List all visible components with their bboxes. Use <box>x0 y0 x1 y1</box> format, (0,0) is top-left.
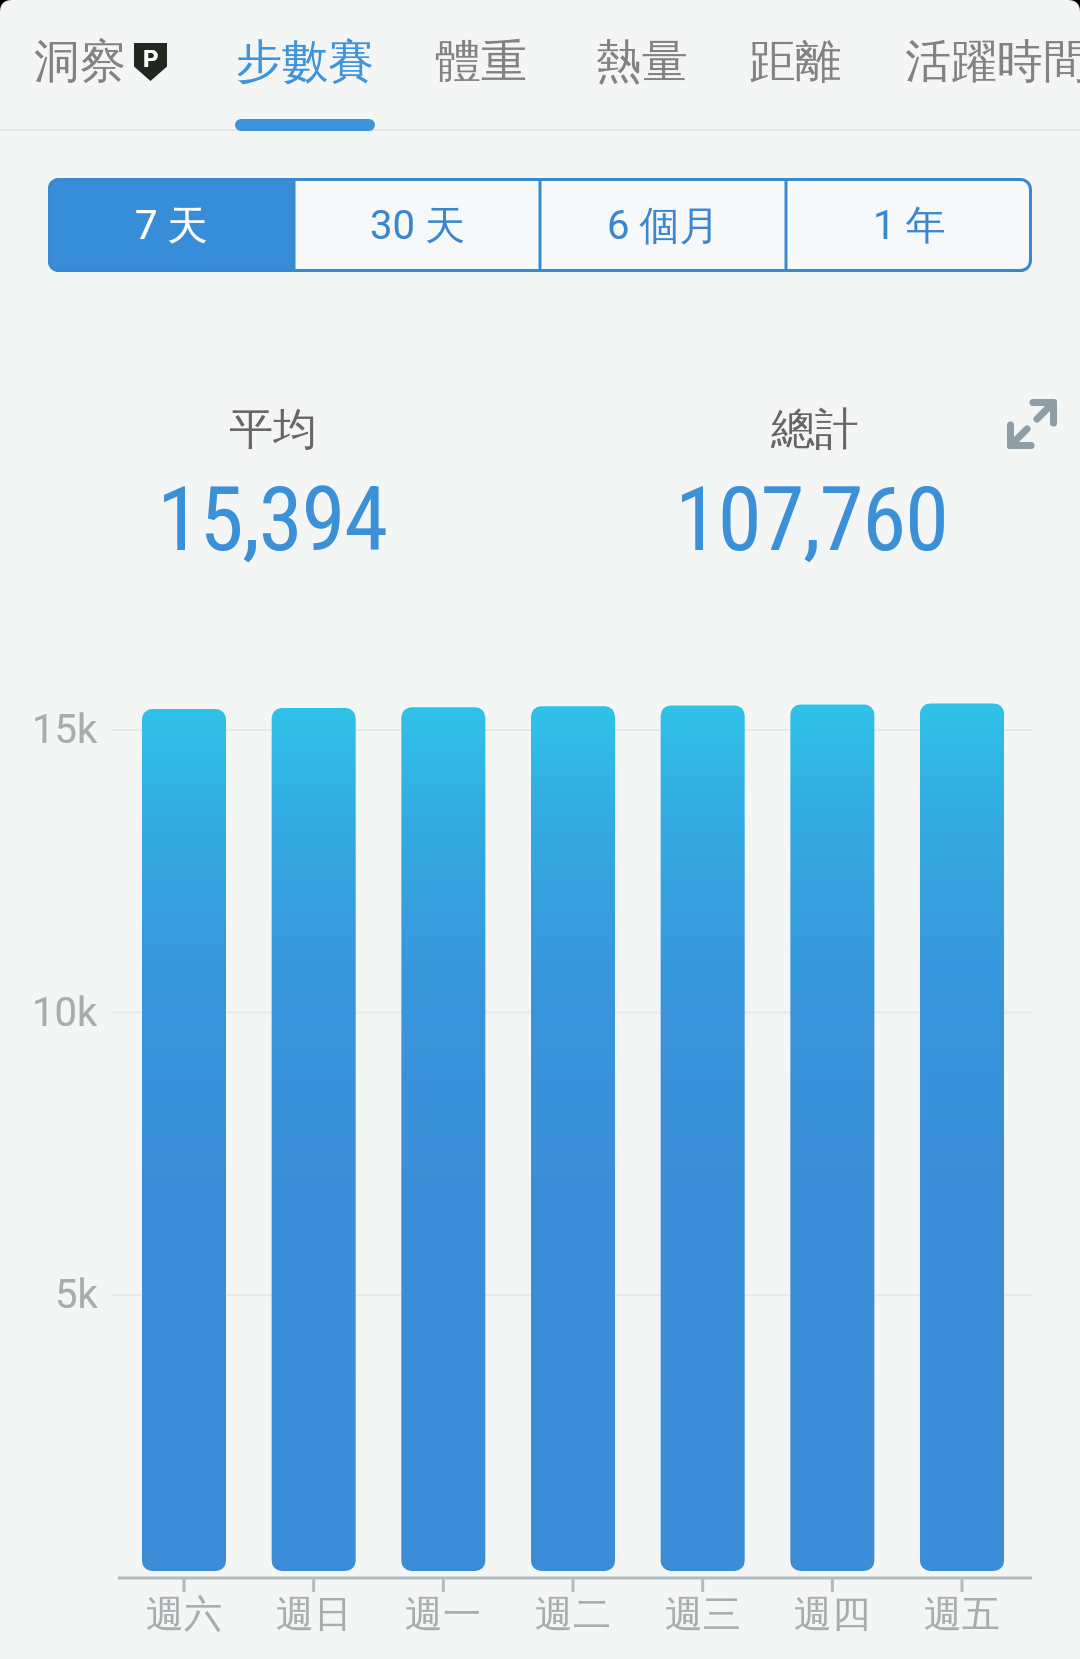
staticText: 7 天 <box>135 200 208 250</box>
staticText: 1 年 <box>873 200 946 250</box>
button[interactable]: 熱量 <box>572 17 712 107</box>
staticText: 週五 <box>924 1590 1000 1636</box>
button[interactable]: 洞察 <box>24 16 176 108</box>
button[interactable]: 體重 <box>411 17 551 107</box>
staticText: 週三 <box>665 1590 741 1636</box>
staticText: 距離 <box>749 33 841 91</box>
button[interactable]: 活躍時間 <box>905 17 1080 107</box>
staticText: 週一 <box>405 1590 481 1636</box>
staticText: 週日 <box>276 1590 352 1636</box>
staticText: 活躍時間 <box>905 33 1080 91</box>
staticText: 熱量 <box>596 33 688 91</box>
button[interactable]: 1 年 <box>786 178 1032 272</box>
staticText: P <box>143 45 159 73</box>
staticText: 10k <box>32 989 98 1036</box>
button[interactable]: 6 個月 <box>540 178 786 272</box>
button[interactable]: 距離 <box>725 17 865 107</box>
staticText: 15,394 <box>157 467 387 571</box>
staticText: 平均 <box>229 402 317 452</box>
staticText: 週四 <box>794 1590 870 1636</box>
staticText: 總計 <box>771 402 859 452</box>
staticText: 體重 <box>435 33 527 91</box>
staticText: 5k <box>55 1271 98 1318</box>
button[interactable]: 7 天 <box>48 178 294 272</box>
staticText: 107,760 <box>675 467 948 571</box>
staticText: 30 天 <box>370 200 465 250</box>
button[interactable]: 30 天 <box>294 178 540 272</box>
staticText: 6 個月 <box>607 200 720 250</box>
staticText: 週二 <box>535 1590 611 1636</box>
button[interactable]: 步數賽 <box>215 17 395 107</box>
staticText: 洞察 <box>34 33 126 91</box>
staticText: 週六 <box>146 1590 222 1636</box>
button[interactable] <box>1000 392 1064 456</box>
staticText: 步數賽 <box>236 33 374 91</box>
staticText: 15k <box>32 706 98 753</box>
